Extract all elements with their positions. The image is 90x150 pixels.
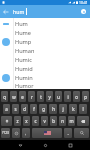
staticText: z bbox=[16, 118, 19, 124]
button[interactable]: q bbox=[1, 91, 8, 102]
staticText: 10:41 bbox=[79, 0, 88, 5]
button[interactable] bbox=[77, 116, 89, 126]
staticText: n bbox=[61, 118, 64, 124]
staticText: Humor bbox=[15, 82, 34, 89]
button[interactable]: Hum bbox=[0, 19, 90, 28]
button[interactable] bbox=[32, 128, 62, 138]
button[interactable]: Human bbox=[0, 46, 90, 55]
staticText: b bbox=[52, 118, 55, 124]
staticText: i bbox=[67, 94, 69, 100]
button[interactable]: f bbox=[30, 104, 37, 114]
staticText: g bbox=[42, 106, 45, 112]
staticText: k bbox=[72, 106, 75, 112]
staticText: Hum bbox=[15, 20, 28, 28]
staticText: s bbox=[14, 106, 17, 112]
staticText: Humid bbox=[15, 65, 33, 73]
button[interactable]: l bbox=[79, 104, 87, 114]
staticText: t bbox=[40, 94, 42, 100]
staticText: l bbox=[82, 106, 84, 112]
staticText: y bbox=[48, 94, 51, 100]
button[interactable] bbox=[74, 128, 89, 138]
staticText: w bbox=[12, 94, 16, 100]
button[interactable]: s bbox=[12, 104, 19, 114]
staticText: e bbox=[21, 94, 24, 100]
button[interactable]: Hume bbox=[0, 28, 90, 37]
staticText: Hume bbox=[15, 29, 31, 37]
staticText: h bbox=[52, 106, 55, 112]
button[interactable]: Home bbox=[40, 140, 50, 150]
button[interactable]: Humic bbox=[0, 55, 90, 64]
button[interactable]: n bbox=[59, 116, 66, 126]
button[interactable]: g bbox=[39, 104, 47, 114]
button[interactable]: a bbox=[3, 104, 10, 114]
button[interactable]: r bbox=[28, 91, 35, 102]
button[interactable] bbox=[12, 128, 20, 138]
staticText: a bbox=[5, 106, 8, 112]
staticText: . bbox=[67, 130, 69, 136]
button[interactable]: o bbox=[73, 91, 80, 102]
button[interactable]: ?123 bbox=[1, 128, 10, 138]
button[interactable]: Humin bbox=[0, 73, 90, 82]
staticText: v bbox=[43, 118, 46, 124]
button[interactable]: z bbox=[14, 116, 21, 126]
button[interactable] bbox=[1, 116, 12, 126]
button[interactable]: Humor bbox=[0, 82, 90, 89]
staticText: hum bbox=[13, 8, 25, 15]
staticText: u bbox=[57, 94, 60, 100]
button[interactable]: , bbox=[22, 128, 30, 138]
staticText: j bbox=[62, 106, 64, 112]
staticText: c bbox=[34, 118, 37, 124]
staticText: f bbox=[33, 106, 35, 112]
button[interactable]: j bbox=[59, 104, 67, 114]
button[interactable]: m bbox=[68, 116, 75, 126]
button[interactable]: h bbox=[49, 104, 57, 114]
staticText: Humin bbox=[15, 74, 33, 82]
button[interactable]: i bbox=[64, 91, 71, 102]
button[interactable]: x bbox=[23, 116, 30, 126]
button[interactable]: . bbox=[64, 128, 72, 138]
button[interactable]: y bbox=[46, 91, 53, 102]
button[interactable]: d bbox=[21, 104, 28, 114]
button[interactable]: e bbox=[19, 91, 26, 102]
staticText: d bbox=[23, 106, 26, 112]
staticText: o bbox=[75, 94, 78, 100]
button[interactable]: c bbox=[32, 116, 39, 126]
button[interactable]: Back bbox=[15, 140, 25, 150]
button[interactable]: w bbox=[10, 91, 17, 102]
staticText: m bbox=[69, 118, 74, 124]
button[interactable]: u bbox=[55, 91, 62, 102]
button[interactable]: p bbox=[82, 91, 89, 102]
staticText: x bbox=[25, 118, 28, 124]
button[interactable]: Hump bbox=[0, 37, 90, 46]
button[interactable]: t bbox=[37, 91, 44, 102]
staticText: p bbox=[84, 94, 87, 100]
staticText: Humic bbox=[15, 56, 32, 64]
staticText: Hump bbox=[15, 38, 32, 46]
button[interactable]: k bbox=[69, 104, 77, 114]
staticText: Human bbox=[15, 47, 35, 55]
button[interactable]: Humid bbox=[0, 64, 90, 73]
button[interactable]: Recent apps bbox=[65, 140, 75, 150]
staticText: q bbox=[3, 94, 6, 100]
staticText: r bbox=[31, 94, 33, 100]
staticText: ?123 bbox=[2, 131, 9, 135]
button[interactable]: b bbox=[50, 116, 57, 126]
button[interactable]: v bbox=[41, 116, 48, 126]
button[interactable]: Back bbox=[0, 5, 12, 18]
staticText: , bbox=[25, 130, 27, 136]
button[interactable]: Clear query bbox=[77, 5, 89, 18]
